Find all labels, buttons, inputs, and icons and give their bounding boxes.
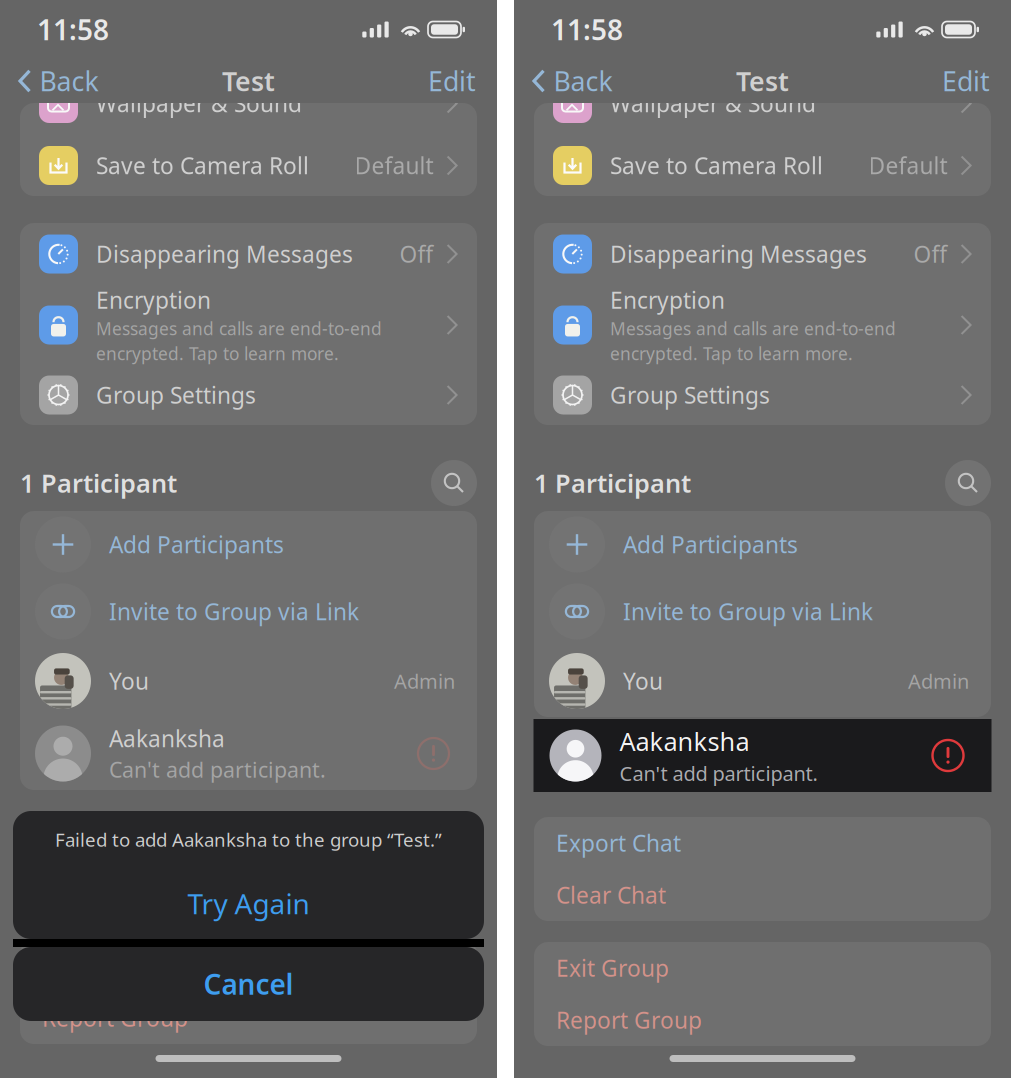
- staticText: Messages and calls are end-to-end: [610, 317, 896, 340]
- staticText: Clear Chat: [556, 880, 666, 910]
- staticText: Can't add participant.: [109, 755, 326, 784]
- button[interactable]: You: [20, 645, 477, 717]
- button[interactable]: Exit Group: [20, 940, 477, 992]
- staticText: Wallpaper & Sound: [96, 88, 302, 118]
- button[interactable]: Group Settings: [534, 365, 991, 425]
- staticText: Export Chat: [556, 828, 681, 858]
- staticText: 11:58: [551, 11, 623, 48]
- button[interactable]: Save to Camera Roll: [20, 134, 477, 196]
- staticText: Add Participants: [109, 529, 284, 559]
- staticText: Try Again: [187, 885, 309, 922]
- staticText: Exit Group: [556, 953, 669, 983]
- button[interactable]: Disappearing Messages: [534, 223, 991, 285]
- staticText: Default: [355, 150, 434, 180]
- button[interactable]: Save to Camera Roll: [534, 134, 991, 196]
- staticText: Cancel: [203, 965, 293, 1003]
- staticText: Disappearing Messages: [96, 239, 353, 269]
- staticText: Back: [553, 63, 612, 99]
- staticText: Invite to Group via Link: [623, 596, 873, 626]
- staticText: Disappearing Messages: [610, 239, 867, 269]
- button[interactable]: Report Group: [534, 994, 991, 1046]
- staticText: Group Settings: [96, 380, 256, 410]
- button[interactable]: Disappearing Messages: [20, 223, 477, 285]
- button[interactable]: Encryption: [534, 285, 991, 365]
- button[interactable]: Add Participants: [20, 511, 477, 578]
- staticText: Encryption: [96, 285, 211, 315]
- staticText: Wallpaper & Sound: [610, 88, 816, 118]
- button[interactable]: Aakanksha: [533, 719, 991, 792]
- button[interactable]: Report Group: [20, 992, 477, 1044]
- button[interactable]: Aakanksha: [20, 717, 477, 790]
- button[interactable]: Group Settings: [20, 365, 477, 425]
- button[interactable]: Clear Chat: [20, 867, 477, 919]
- staticText: Edit: [942, 63, 990, 99]
- button[interactable]: Search participants: [431, 460, 477, 506]
- staticText: You: [623, 666, 663, 696]
- staticText: 1 Participant: [20, 466, 177, 500]
- staticText: Admin: [394, 668, 455, 694]
- staticText: Back: [39, 63, 98, 99]
- staticText: Test: [736, 63, 789, 99]
- staticText: Invite to Group via Link: [109, 596, 359, 626]
- button[interactable]: Exit Group: [534, 942, 991, 994]
- staticText: Encryption: [610, 285, 725, 315]
- button[interactable]: Encryption: [20, 285, 477, 365]
- staticText: Can't add participant.: [619, 760, 817, 787]
- button[interactable]: Invite to Group via Link: [534, 578, 991, 645]
- staticText: Add Participants: [623, 529, 798, 559]
- staticText: You: [109, 666, 149, 696]
- staticText: Aakanksha: [619, 724, 749, 758]
- button[interactable]: Export Chat: [20, 815, 477, 867]
- staticText: Report Group: [42, 1003, 188, 1033]
- staticText: Group Settings: [610, 380, 770, 410]
- button[interactable]: Back: [0, 55, 98, 107]
- button[interactable]: Try Again: [13, 868, 484, 939]
- staticText: Report Group: [556, 1005, 702, 1035]
- staticText: Messages and calls are end-to-end: [96, 317, 382, 340]
- button[interactable]: Add Participants: [534, 511, 991, 578]
- button[interactable]: Cancel: [13, 947, 484, 1021]
- button[interactable]: Clear Chat: [534, 869, 991, 921]
- staticText: Test: [222, 63, 275, 99]
- staticText: encrypted. Tap to learn more.: [96, 342, 339, 365]
- staticText: Off: [914, 239, 948, 269]
- button[interactable]: You: [534, 645, 991, 717]
- staticText: encrypted. Tap to learn more.: [610, 342, 853, 365]
- staticText: Default: [869, 150, 948, 180]
- button[interactable]: Back: [514, 55, 612, 107]
- staticText: Failed to add Aakanksha to the group “Te…: [55, 827, 442, 852]
- staticText: 11:58: [37, 11, 109, 48]
- staticText: Aakanksha: [109, 723, 225, 753]
- button[interactable]: Invite to Group via Link: [20, 578, 477, 645]
- staticText: 1 Participant: [534, 466, 691, 500]
- button[interactable]: Edit: [428, 55, 497, 107]
- staticText: Save to Camera Roll: [96, 150, 309, 180]
- staticText: Admin: [908, 668, 969, 694]
- button[interactable]: Edit: [942, 55, 1011, 107]
- staticText: Export Chat: [42, 826, 167, 856]
- button[interactable]: Search participants: [945, 460, 991, 506]
- staticText: Edit: [428, 63, 476, 99]
- button[interactable]: Export Chat: [534, 817, 991, 869]
- staticText: Save to Camera Roll: [610, 150, 823, 180]
- staticText: Off: [400, 239, 434, 269]
